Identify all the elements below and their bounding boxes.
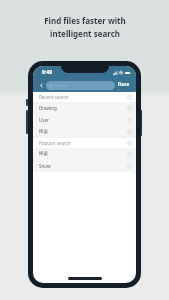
- staticText: 9:49: [42, 69, 52, 76]
- button[interactable]: User: [33, 114, 136, 126]
- staticText: intelligent search: [50, 28, 120, 39]
- staticText: 搜索: [39, 151, 48, 157]
- staticText: Find files faster with: [44, 15, 126, 26]
- button[interactable]: Popular search: [33, 138, 136, 148]
- staticText: Drawing: [39, 105, 57, 111]
- button[interactable]: Back: [37, 80, 45, 91]
- button[interactable]: Reset: [117, 79, 132, 92]
- staticText: 搜索: [39, 129, 48, 135]
- staticText: Search: [54, 83, 68, 89]
- staticText: Popular search: [39, 140, 71, 146]
- button[interactable]: 搜索: [33, 148, 136, 160]
- staticText: Recent search: [39, 94, 69, 100]
- button[interactable]: Drawing: [33, 102, 136, 114]
- button[interactable]: Search: [46, 81, 115, 90]
- button[interactable]: Recent search: [33, 92, 136, 102]
- button[interactable]: 搜索: [33, 126, 136, 138]
- staticText: Snow: [39, 163, 51, 169]
- staticText: User: [39, 117, 49, 123]
- staticText: Reset: [118, 81, 131, 90]
- button[interactable]: Snow: [33, 160, 136, 172]
